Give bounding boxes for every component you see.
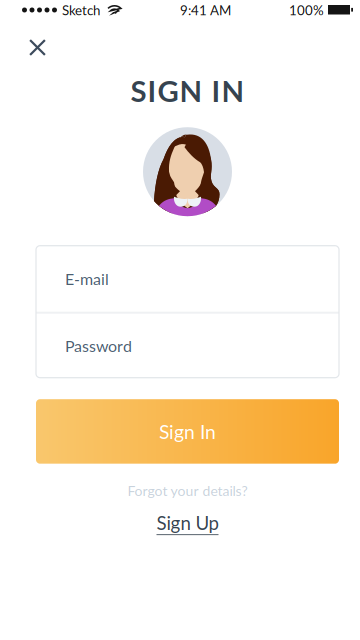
staticText: 9:41 AM	[180, 2, 231, 18]
staticText: Sketch	[62, 2, 100, 18]
staticText: Sign In	[159, 420, 216, 443]
button[interactable]: E-mail	[36, 246, 339, 312]
staticText: Forgot your details?	[127, 482, 247, 499]
staticText: SIGN IN	[130, 73, 244, 108]
button[interactable]: Sign In	[36, 399, 339, 464]
button[interactable]: Sign Up	[156, 512, 218, 534]
staticText: Password	[65, 336, 132, 355]
staticText: Sign Up	[156, 511, 218, 534]
button[interactable]: Close	[20, 30, 55, 65]
button[interactable]: Password	[36, 314, 339, 378]
button[interactable]: Forgot your details?	[127, 481, 247, 501]
staticText: E-mail	[65, 269, 109, 288]
staticText: 100%	[289, 2, 324, 18]
